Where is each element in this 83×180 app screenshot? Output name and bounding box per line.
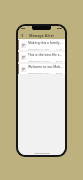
button[interactable]: Welcome to our Mobile App bbox=[18, 64, 65, 74]
staticText: 09:15 bbox=[56, 59, 63, 62]
button[interactable]: This is the best file sharing app in… bbox=[18, 52, 65, 62]
staticText: 08:00 bbox=[56, 71, 63, 74]
staticText: Welcome to our Mobile App bbox=[28, 65, 63, 69]
staticText: December 12, 2021 bbox=[28, 47, 50, 50]
staticText: This is the best file sharing app in… bbox=[28, 53, 63, 57]
staticText: Making this a family Christmas tra… bbox=[28, 41, 63, 45]
staticText: 11:40 bbox=[56, 47, 63, 50]
staticText: December 02, 2021 bbox=[28, 71, 50, 74]
staticText: December 10, 2021 bbox=[28, 59, 50, 62]
staticText: Manage Alert bbox=[29, 33, 54, 38]
button[interactable]: Back bbox=[19, 32, 25, 38]
button[interactable]: Making this a family Christmas tra… bbox=[18, 40, 65, 50]
